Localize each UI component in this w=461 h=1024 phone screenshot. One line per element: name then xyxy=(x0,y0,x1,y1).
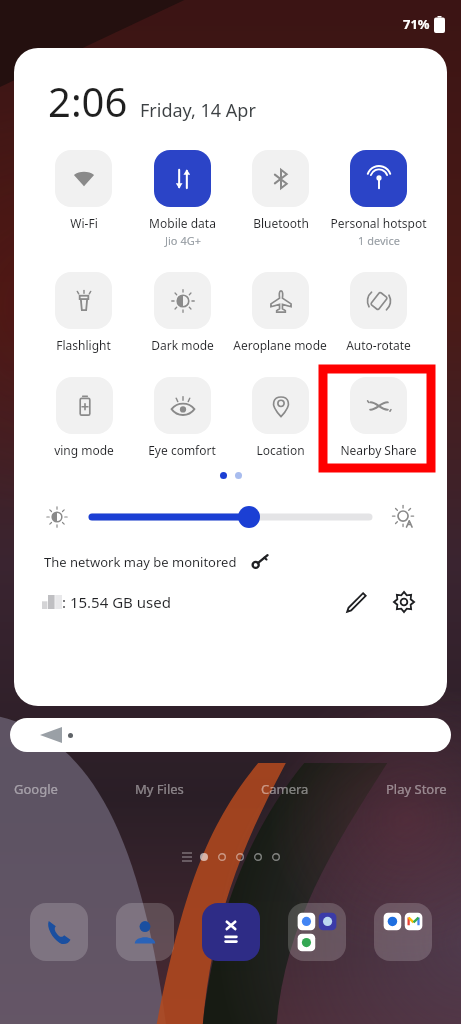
button[interactable]: Personal hotspot xyxy=(330,150,427,248)
staticText: Personal hotspot xyxy=(330,215,427,231)
button[interactable]: Wi-Fi xyxy=(55,150,112,231)
button[interactable]: ving mode xyxy=(54,377,114,458)
staticText: Bluetooth xyxy=(253,215,309,231)
staticText: My Files xyxy=(135,780,184,798)
staticText: Location xyxy=(256,442,305,458)
button[interactable] xyxy=(88,504,373,530)
button[interactable]: Brightness xyxy=(42,502,72,532)
button[interactable]: Edit xyxy=(339,585,373,619)
staticText: Jio 4G+ xyxy=(165,233,201,248)
button[interactable]: Calculator xyxy=(202,903,260,961)
button[interactable]: Auto brightness xyxy=(389,502,419,532)
staticText: ving mode xyxy=(54,442,114,458)
button[interactable]: Settings xyxy=(387,585,421,619)
staticText: Aeroplane mode xyxy=(233,337,327,353)
staticText: Flashlight xyxy=(56,337,111,353)
button[interactable]: Dark mode xyxy=(151,272,214,353)
staticText: The network may be monitored xyxy=(44,553,237,571)
staticText: Mobile data xyxy=(149,215,216,231)
button[interactable]: App xyxy=(374,903,432,961)
staticText: Nearby Share xyxy=(340,442,417,458)
staticText: Camera xyxy=(261,780,309,798)
button[interactable]: Flashlight xyxy=(55,272,112,353)
staticText: 1 device xyxy=(358,233,400,248)
button[interactable]: Aeroplane mode xyxy=(233,272,327,353)
staticText: Auto-rotate xyxy=(346,337,411,353)
staticText: Google xyxy=(14,780,58,798)
staticText: 2:06 xyxy=(48,74,128,128)
button[interactable]: Bluetooth xyxy=(252,150,309,231)
staticText: Dark mode xyxy=(151,337,214,353)
staticText: Eye comfort xyxy=(148,442,216,458)
button[interactable]: App xyxy=(116,903,174,961)
button[interactable]: Auto-rotate xyxy=(346,272,411,353)
button[interactable]: Mobile data xyxy=(149,150,216,248)
staticText: 71% xyxy=(403,15,430,33)
button[interactable]: App xyxy=(288,903,346,961)
button[interactable]: Nearby Share xyxy=(340,377,417,458)
staticText: Friday, 14 Apr xyxy=(140,98,256,123)
staticText: Wi-Fi xyxy=(70,215,98,231)
staticText: : 15.54 GB used xyxy=(62,592,171,612)
button[interactable]: Location xyxy=(252,377,309,458)
button[interactable]: App xyxy=(30,903,88,961)
other: Network monitored xyxy=(251,553,269,571)
button[interactable]: Eye comfort xyxy=(148,377,216,458)
staticText: Play Store xyxy=(386,780,447,798)
